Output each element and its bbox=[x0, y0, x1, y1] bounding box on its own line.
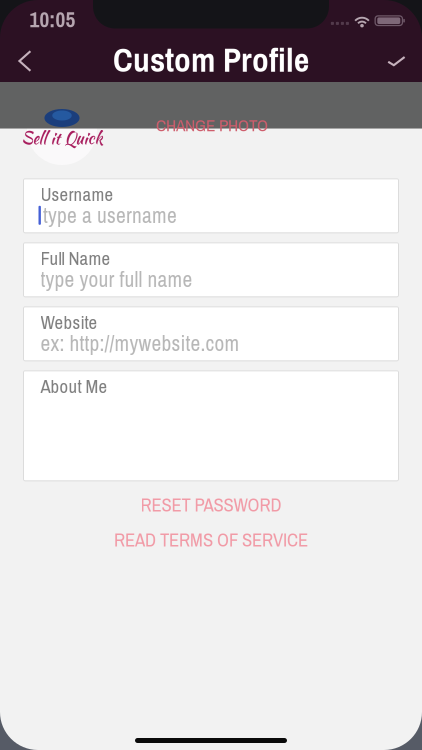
staticText: READ TERMS OF SERVICE bbox=[114, 527, 308, 552]
staticText: type a username bbox=[43, 201, 177, 230]
staticText: Full Name bbox=[40, 246, 110, 271]
button[interactable]: Back bbox=[3, 40, 47, 82]
staticText: Sell it Quick bbox=[21, 126, 102, 150]
button[interactable]: CHANGE PHOTO bbox=[142, 110, 282, 140]
button[interactable]: READ TERMS OF SERVICE bbox=[23, 525, 398, 555]
staticText: type your full name bbox=[40, 265, 192, 294]
staticText: Website bbox=[40, 310, 97, 335]
staticText: ex: http://mywebsite.com bbox=[40, 329, 239, 358]
staticText: 10:05 bbox=[29, 5, 75, 34]
staticText: About Me bbox=[40, 374, 107, 399]
staticText: CHANGE PHOTO bbox=[156, 113, 268, 137]
button[interactable]: Save bbox=[374, 40, 418, 82]
staticText: Custom Profile bbox=[113, 37, 309, 82]
staticText: Username bbox=[40, 182, 113, 207]
staticText: RESET PASSWORD bbox=[140, 492, 281, 517]
button[interactable]: RESET PASSWORD bbox=[23, 490, 398, 520]
